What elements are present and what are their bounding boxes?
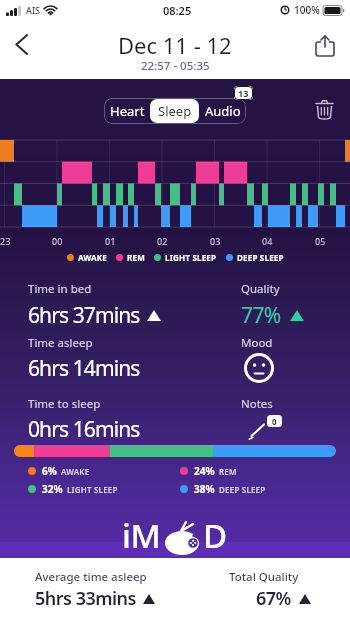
- staticText: Total Quality: [229, 569, 299, 585]
- staticText: 100%: [294, 3, 320, 17]
- button[interactable]: [244, 353, 274, 383]
- staticText: D: [203, 513, 228, 558]
- staticText: Notes: [241, 396, 273, 412]
- button[interactable]: [312, 97, 336, 121]
- staticText: LIGHT SLEEP: [67, 484, 118, 495]
- staticText: Heart: [110, 102, 145, 120]
- staticText: 0: [272, 416, 277, 427]
- staticText: 0hrs 16mins: [28, 415, 140, 444]
- button[interactable]: Heart: [104, 98, 150, 124]
- staticText: Dec 11 - 12: [118, 30, 232, 60]
- staticText: 13: [238, 87, 249, 99]
- staticText: Average time asleep: [35, 569, 147, 585]
- staticText: AWAKE: [61, 466, 90, 477]
- staticText: 02: [157, 235, 168, 247]
- staticText: 77%: [241, 301, 281, 330]
- button[interactable]: Audio: [199, 98, 246, 124]
- staticText: 04: [262, 235, 273, 247]
- staticText: 6hrs 14mins: [28, 354, 140, 383]
- button[interactable]: [6, 29, 36, 59]
- staticText: Sleep: [158, 102, 192, 120]
- staticText: 6hrs 37mins: [28, 301, 140, 330]
- staticText: REM: [219, 466, 237, 477]
- staticText: 6%: [42, 464, 57, 478]
- staticText: DEEP SLEEP: [237, 252, 284, 263]
- staticText: Time to sleep: [28, 396, 101, 412]
- staticText: 01: [105, 235, 116, 247]
- staticText: 05: [315, 235, 326, 247]
- staticText: Quality: [241, 281, 280, 297]
- staticText: 24%: [194, 464, 215, 478]
- staticText: Audio: [205, 102, 241, 120]
- staticText: DEEP SLEEP: [219, 484, 266, 495]
- button[interactable]: 0: [248, 415, 282, 440]
- staticText: 03: [210, 235, 221, 247]
- staticText: Time asleep: [28, 335, 93, 351]
- staticText: Mood: [241, 335, 273, 351]
- staticText: 67%: [256, 586, 291, 611]
- button[interactable]: Sleep: [150, 99, 199, 123]
- staticText: AIS: [26, 4, 41, 16]
- staticText: 38%: [194, 482, 215, 496]
- staticText: LIGHT SLEEP: [165, 252, 217, 263]
- staticText: 22:57 - 05:35: [141, 58, 210, 74]
- staticText: AWAKE: [78, 252, 107, 263]
- staticText: REM: [127, 252, 145, 263]
- button[interactable]: [20, 560, 170, 620]
- staticText: 5hrs 33mins: [35, 586, 136, 611]
- staticText: 23: [0, 235, 11, 247]
- staticText: Time in bed: [28, 281, 92, 297]
- button[interactable]: [215, 560, 325, 620]
- staticText: 08:25: [163, 3, 192, 18]
- staticText: 00: [52, 235, 63, 247]
- button[interactable]: [313, 33, 337, 57]
- staticText: iM: [122, 513, 161, 558]
- staticText: 32%: [42, 482, 63, 496]
